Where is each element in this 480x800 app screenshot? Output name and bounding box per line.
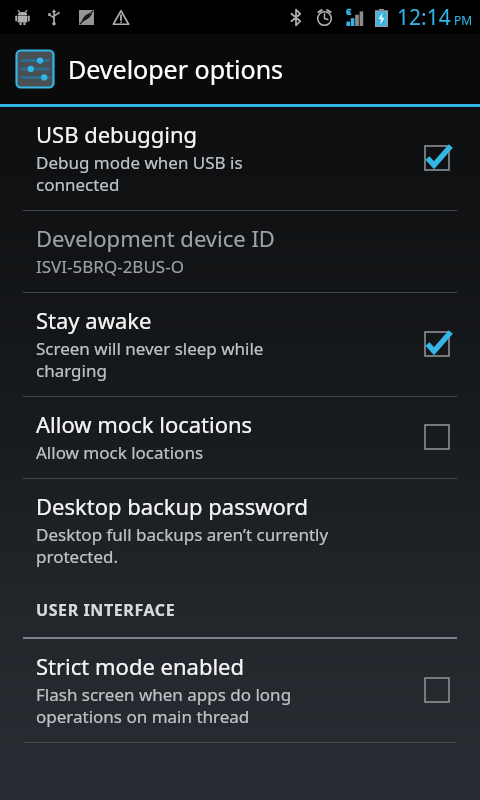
- button[interactable]: Unchecked: [416, 416, 458, 458]
- button[interactable]: Development device ID: [0, 211, 480, 292]
- staticText: PM: [454, 12, 473, 28]
- staticText: Desktop backup password: [36, 491, 309, 521]
- button[interactable]: Stay awake: [0, 293, 480, 396]
- staticText: USER INTERFACE: [36, 599, 176, 621]
- staticText: 12:14: [397, 3, 451, 32]
- staticText: Flash screen when apps do long operation…: [36, 683, 292, 728]
- button[interactable]: Unchecked: [416, 669, 458, 711]
- button[interactable]: USB debugging: [0, 107, 480, 210]
- staticText: Allow mock locations: [36, 441, 204, 464]
- staticText: Allow mock locations: [36, 409, 253, 439]
- staticText: ISVI-5BRQ-2BUS-O: [36, 255, 184, 278]
- staticText: Desktop full backups aren’t currently pr…: [36, 523, 329, 568]
- staticText: Developer options: [68, 52, 284, 86]
- button[interactable]: Checked: [416, 323, 458, 365]
- button[interactable]: Checked: [416, 137, 458, 179]
- staticText: Development device ID: [36, 223, 275, 253]
- button[interactable]: Allow mock locations: [0, 397, 480, 478]
- staticText: Debug mode when USB is connected: [36, 151, 243, 196]
- staticText: USB debugging: [36, 119, 198, 149]
- button[interactable]: Desktop backup password: [0, 479, 480, 582]
- staticText: Screen will never sleep while charging: [36, 337, 264, 382]
- staticText: Stay awake: [36, 305, 152, 335]
- button[interactable]: Strict mode enabled: [0, 639, 480, 742]
- staticText: Strict mode enabled: [36, 651, 245, 681]
